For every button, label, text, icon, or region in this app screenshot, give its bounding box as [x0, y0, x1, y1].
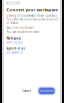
staticText: Continue — [40, 89, 54, 93]
staticText: Signed in as — [6, 47, 24, 50]
staticText: Workspace — [6, 37, 21, 40]
button[interactable]: Continue — [37, 86, 56, 95]
button[interactable]: Cancel — [21, 87, 32, 94]
staticText: Connect your workspace — [6, 7, 57, 12]
staticText: ACCOUNT — [6, 2, 19, 5]
staticText: you@acme.co — [6, 51, 23, 54]
staticText: You can disconnect later — [6, 30, 39, 34]
staticText: Sync is on by default — [6, 26, 34, 29]
staticText: Linking lets teammates share updates, fi… — [6, 14, 59, 25]
staticText: Cancel — [22, 89, 31, 93]
staticText: acme-design — [6, 41, 23, 44]
